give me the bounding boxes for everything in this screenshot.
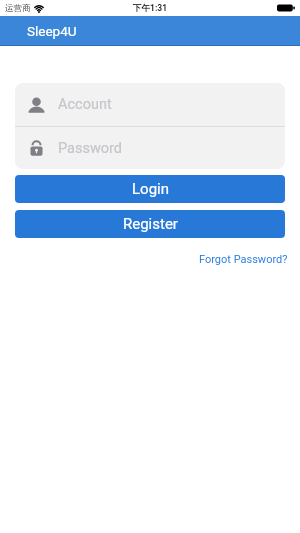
button[interactable]: Password [15,127,285,169]
staticText: 运营商 [5,3,31,14]
staticText: Sleep4U [27,23,77,39]
staticText: Account [58,96,112,113]
staticText: 下午1:31 [133,3,168,14]
button[interactable]: Forgot Password? [199,253,288,266]
button[interactable]: Account [15,83,285,126]
button[interactable]: Login [15,175,285,203]
staticText: Forgot Password? [199,253,288,266]
button[interactable]: Register [15,210,285,238]
staticText: Register [123,215,178,233]
staticText: Password [58,140,123,157]
staticText: Login [132,180,169,198]
